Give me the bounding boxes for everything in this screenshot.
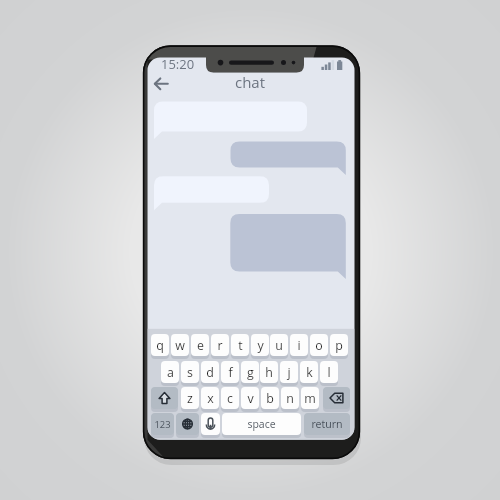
staticText: p [335, 337, 343, 354]
button[interactable]: m [301, 387, 319, 409]
staticText: y [257, 337, 264, 354]
button[interactable]: s [181, 361, 199, 383]
button[interactable]: y [251, 334, 269, 356]
button[interactable]: Shift [151, 387, 178, 409]
staticText: i [297, 337, 301, 354]
button[interactable]: o [310, 334, 328, 356]
button[interactable]: c [221, 387, 239, 409]
staticText: d [206, 364, 214, 381]
button[interactable]: 123 [151, 413, 174, 435]
button[interactable]: x [201, 387, 219, 409]
button[interactable]: space [222, 413, 301, 435]
button[interactable]: j [280, 361, 298, 383]
button[interactable]: r [211, 334, 229, 356]
button[interactable]: e [191, 334, 209, 356]
staticText: v [247, 390, 254, 407]
staticText: q [156, 337, 164, 354]
staticText: chat [235, 72, 265, 91]
staticText: return [311, 417, 343, 431]
staticText: 123 [154, 418, 171, 431]
staticText: u [275, 337, 283, 354]
button[interactable]: n [281, 387, 299, 409]
staticText: k [306, 364, 313, 381]
button[interactable]: b [261, 387, 279, 409]
button[interactable]: u [270, 334, 288, 356]
staticText: a [167, 364, 174, 381]
button[interactable]: l [320, 361, 338, 383]
button[interactable]: k [300, 361, 318, 383]
staticText: t [238, 337, 243, 354]
button[interactable]: w [171, 334, 189, 356]
button[interactable]: return [304, 413, 350, 435]
button[interactable]: Voice input [201, 413, 220, 435]
staticText: m [304, 390, 316, 407]
button[interactable]: z [181, 387, 199, 409]
staticText: n [286, 390, 294, 407]
staticText: g [247, 364, 254, 381]
staticText: b [266, 390, 274, 407]
button[interactable]: q [151, 334, 169, 356]
button[interactable]: Back [151, 73, 171, 94]
staticText: c [227, 390, 233, 407]
button[interactable]: v [241, 387, 259, 409]
staticText: l [327, 364, 331, 381]
staticText: 15:20 [161, 55, 195, 73]
button[interactable]: Switch language [176, 413, 199, 435]
staticText: h [265, 364, 273, 381]
button[interactable]: t [231, 334, 249, 356]
staticText: w [175, 337, 185, 354]
staticText: j [287, 364, 291, 381]
button[interactable]: p [330, 334, 348, 356]
button[interactable]: chat [225, 72, 275, 91]
staticText: f [228, 364, 233, 381]
button[interactable]: i [290, 334, 308, 356]
button[interactable]: d [201, 361, 219, 383]
staticText: z [187, 390, 193, 407]
button[interactable]: a [161, 361, 179, 383]
staticText: e [197, 337, 204, 354]
button[interactable]: g [241, 361, 259, 383]
staticText: x [207, 390, 214, 407]
staticText: space [247, 417, 276, 431]
staticText: r [217, 337, 223, 354]
staticText: o [315, 337, 323, 354]
button[interactable]: Backspace [323, 387, 350, 409]
staticText: s [187, 364, 193, 381]
button[interactable]: f [221, 361, 239, 383]
button[interactable]: h [260, 361, 278, 383]
